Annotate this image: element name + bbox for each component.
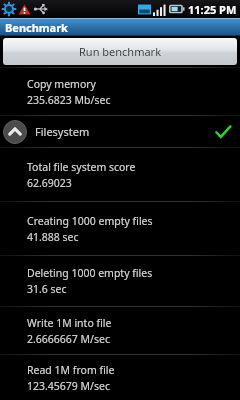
staticText: 2.6666667 M/sec — [27, 332, 111, 346]
staticText: Deleting 1000 empty files — [27, 266, 153, 280]
staticText: Read 1M from file — [27, 363, 115, 377]
button[interactable]: Read 1M from file — [0, 355, 240, 400]
staticText: 31.6 sec — [27, 282, 67, 296]
staticText: Write 1M into file — [27, 316, 112, 330]
button[interactable]: Deleting 1000 empty files — [0, 256, 240, 306]
button[interactable]: Collapse Filesystem — [0, 116, 240, 147]
staticText: 123.45679 M/sec — [27, 379, 111, 393]
button[interactable]: Write 1M into file — [0, 307, 240, 354]
button[interactable]: Run benchmark — [3, 38, 237, 65]
staticText: 11:25 PM — [188, 2, 237, 17]
button[interactable]: Creating 1000 empty files — [0, 202, 240, 255]
button[interactable]: Total file system score — [0, 148, 240, 201]
staticText: 235.6823 Mb/sec — [27, 93, 111, 107]
staticText: Total file system score — [27, 160, 136, 174]
staticText: Creating 1000 empty files — [27, 214, 153, 228]
staticText: Benchmark — [5, 20, 68, 35]
staticText: Copy memory — [27, 77, 96, 91]
button[interactable]: Collapse Filesystem — [3, 120, 27, 144]
staticText: 41.888 sec — [27, 230, 79, 244]
staticText: Run benchmark — [79, 44, 162, 59]
staticText: 62.69023 — [27, 176, 72, 190]
button[interactable]: Copy memory — [0, 68, 240, 115]
staticText: Filesystem — [35, 124, 90, 139]
